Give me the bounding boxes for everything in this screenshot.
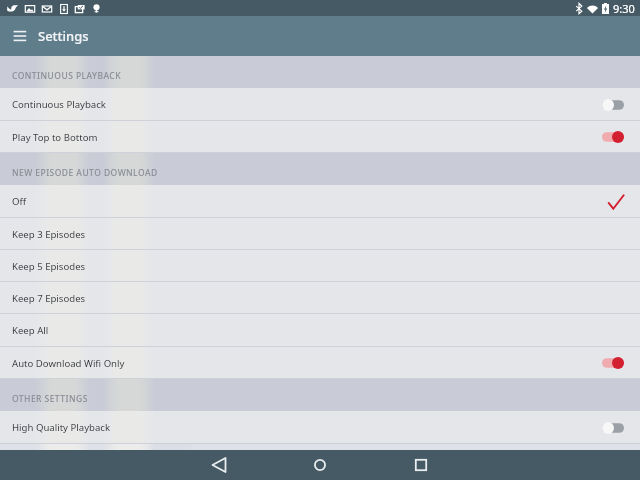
staticText: Continuous Playback — [12, 98, 106, 111]
button[interactable]: Back — [204, 450, 234, 480]
button[interactable]: Auto Download Wifi Only — [0, 347, 640, 379]
staticText: 9:30 — [613, 1, 635, 16]
button[interactable]: Open navigation menu — [8, 24, 32, 48]
button[interactable]: Recent apps — [406, 450, 436, 480]
button[interactable]: Continuous Playback — [0, 88, 640, 121]
staticText: Play Top to Bottom — [12, 131, 98, 144]
staticText: Keep All — [12, 324, 49, 337]
button[interactable]: Keep 5 Episodes — [0, 250, 640, 282]
staticText: High Quality Playback — [12, 421, 111, 434]
staticText: Keep 5 Episodes — [12, 260, 86, 273]
button[interactable]: High Quality Playback — [0, 411, 640, 444]
staticText: OTHER SETTINGS — [12, 393, 88, 405]
button[interactable]: Play Top to Bottom — [0, 121, 640, 153]
staticText: Settings — [38, 27, 89, 45]
button[interactable]: Keep 7 Episodes — [0, 282, 640, 314]
button[interactable]: Home — [305, 450, 335, 480]
button[interactable]: Keep 3 Episodes — [0, 218, 640, 250]
button[interactable]: Off — [0, 185, 640, 218]
staticText: CONTINUOUS PLAYBACK — [12, 70, 121, 82]
staticText: Keep 7 Episodes — [12, 292, 86, 305]
staticText: Auto Download Wifi Only — [12, 357, 125, 370]
staticText: Keep 3 Episodes — [12, 228, 86, 241]
staticText: Off — [12, 195, 27, 208]
button[interactable]: Keep All — [0, 314, 640, 347]
staticText: NEW EPISODE AUTO DOWNLOAD — [12, 167, 158, 179]
